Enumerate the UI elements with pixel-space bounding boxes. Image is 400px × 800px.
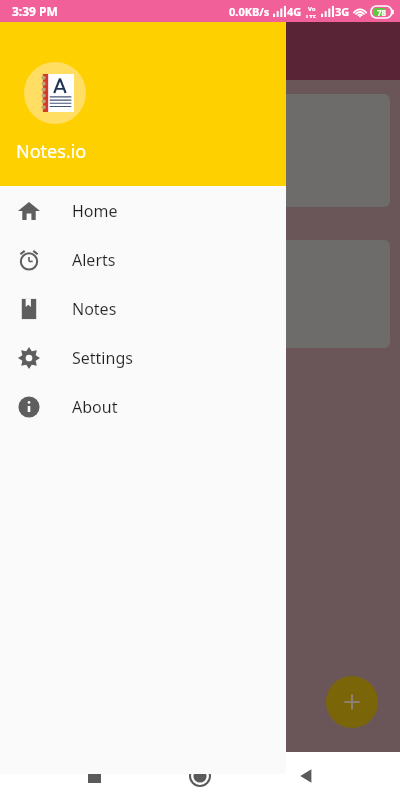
staticText: 0.0KB/s — [229, 4, 270, 19]
button[interactable]: Ping me on whatsapp dude! — [10, 94, 390, 207]
button[interactable]: Add note — [326, 676, 378, 728]
button[interactable]: Back — [290, 760, 322, 792]
staticText: 3G — [335, 4, 350, 19]
button[interactable]: Home — [184, 760, 216, 792]
staticText: 4G — [287, 4, 302, 19]
button[interactable]: Recent apps — [78, 760, 110, 792]
staticText: Ping me on whatsapp dude! — [24, 104, 248, 127]
button[interactable]: Notes — [0, 284, 286, 333]
button[interactable]: Home — [0, 186, 286, 235]
button[interactable]: Settings — [0, 333, 286, 382]
staticText: Notes.io — [16, 139, 87, 164]
button[interactable]: About — [0, 382, 286, 431]
staticText: Settings — [72, 347, 133, 369]
staticText: LTE — [306, 13, 317, 18]
button[interactable]: Alerts — [0, 235, 286, 284]
staticText: Vo — [308, 5, 316, 13]
staticText: 3:39 PM — [12, 3, 58, 19]
staticText: Home — [72, 200, 118, 222]
staticText: Notes — [72, 298, 117, 320]
staticText: Alerts — [72, 249, 116, 271]
staticText: Don't forget. — [24, 131, 108, 150]
button[interactable]: Jun 5 '19 — [10, 240, 390, 348]
staticText: 78 — [377, 7, 387, 18]
staticText: About — [72, 396, 118, 418]
staticText: Jun 5 '19 — [24, 306, 76, 324]
